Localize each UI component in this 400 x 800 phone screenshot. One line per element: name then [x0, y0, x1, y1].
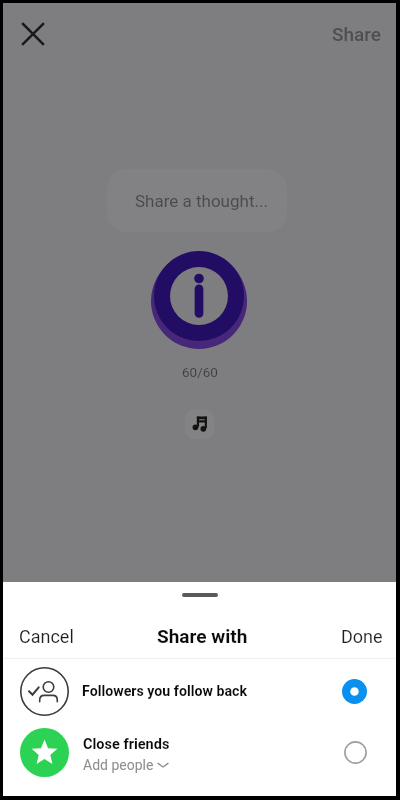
- staticText: Share a thought...: [135, 191, 268, 211]
- button[interactable]: Followers you follow back: [3, 659, 396, 723]
- button[interactable]: Done: [330, 616, 394, 657]
- staticText: Cancel: [19, 626, 74, 647]
- button[interactable]: Close friends: [3, 723, 396, 781]
- button[interactable]: Music: [185, 410, 214, 439]
- staticText: Close friends: [83, 736, 170, 753]
- button[interactable]: Share a thought...: [107, 169, 287, 232]
- button[interactable]: Close: [13, 14, 53, 54]
- button[interactable]: Share: [321, 14, 393, 54]
- staticText: Done: [341, 626, 383, 647]
- staticText: Share with: [157, 625, 248, 647]
- staticText: Share: [332, 23, 382, 45]
- button[interactable]: Cancel: [3, 616, 90, 657]
- staticText: Add people: [83, 757, 154, 773]
- staticText: 60/60: [182, 364, 218, 380]
- staticText: Followers you follow back: [82, 683, 248, 700]
